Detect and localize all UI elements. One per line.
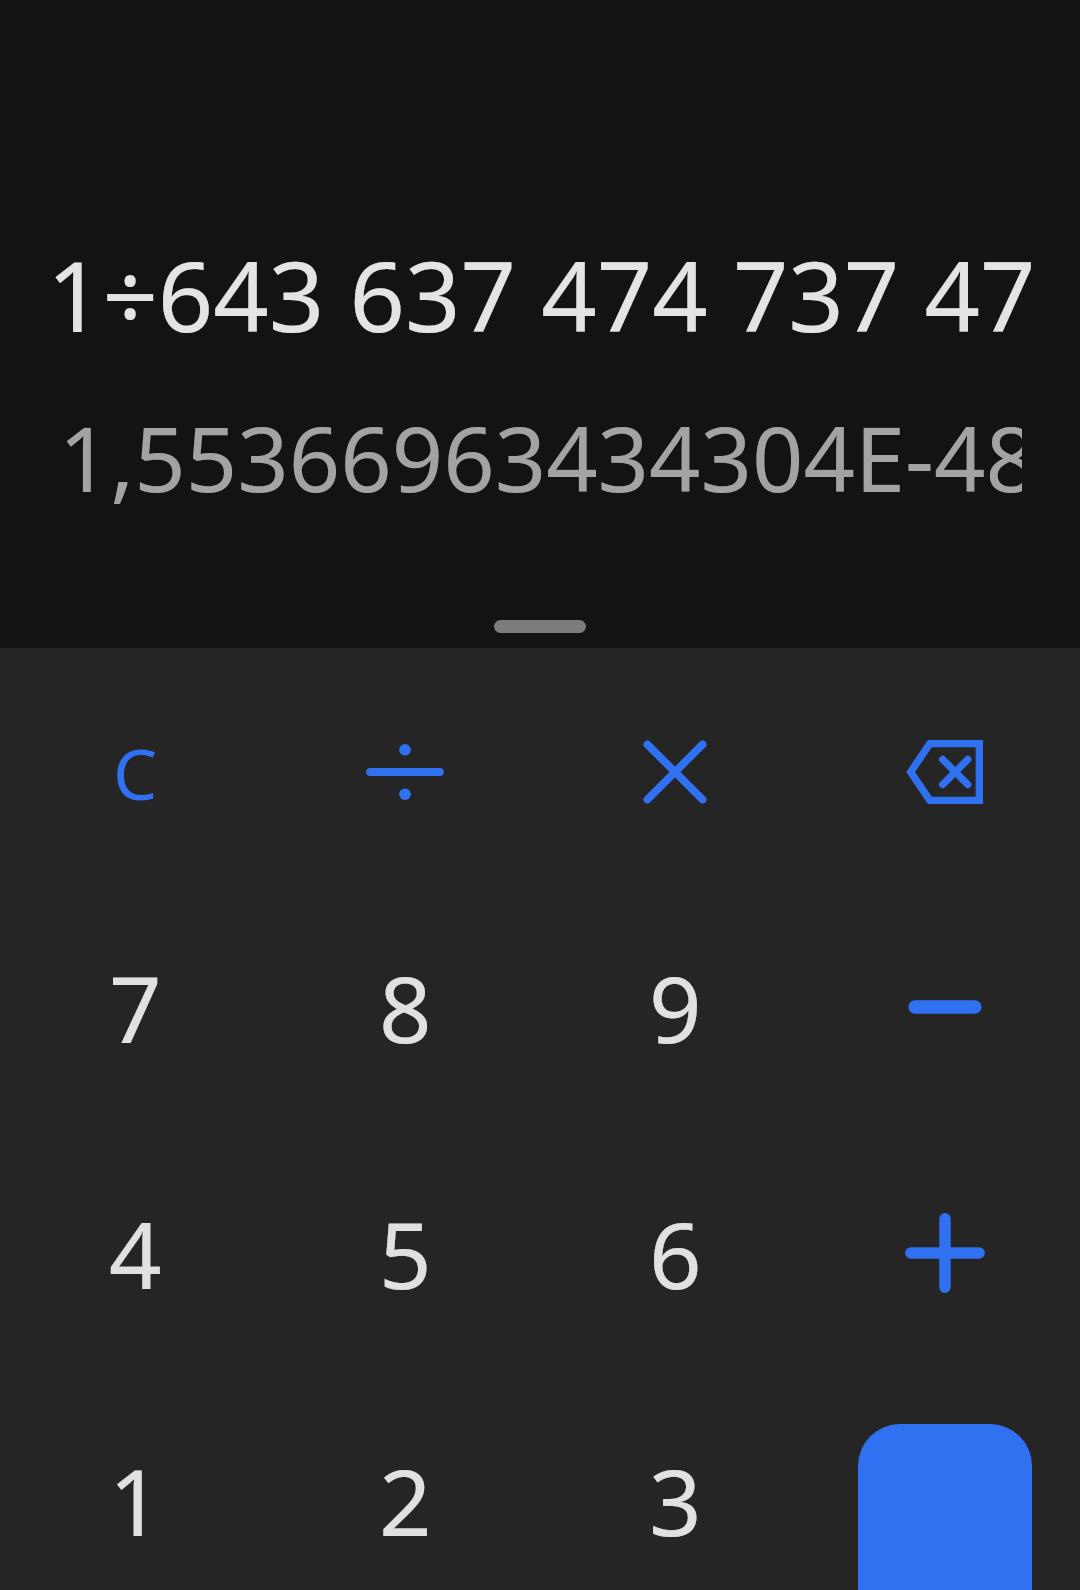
button[interactable]: Divide (290, 672, 520, 872)
button[interactable]: Equals (858, 1424, 1032, 1590)
button[interactable]: 8 (290, 897, 520, 1117)
staticText: 4 (109, 1191, 162, 1316)
staticText: 2 (379, 1438, 432, 1563)
staticText: 3 (649, 1438, 702, 1563)
button[interactable]: 3 (560, 1410, 790, 1590)
staticText: 1 (109, 1438, 162, 1563)
button[interactable]: 5 (290, 1143, 520, 1363)
button[interactable]: 1 (20, 1410, 250, 1590)
staticText: 6 (649, 1191, 702, 1316)
button[interactable]: 4 (20, 1143, 250, 1363)
button[interactable]: Drag handle, show history (464, 600, 616, 653)
staticText: 1÷643 637 474 737 474 (46, 228, 1034, 360)
button[interactable]: Clear (20, 672, 250, 872)
button[interactable]: 7 (20, 897, 250, 1117)
staticText: C (113, 725, 158, 820)
button[interactable]: 9 (560, 897, 790, 1117)
button[interactable]: Backspace (830, 672, 1060, 872)
button[interactable]: Multiply (560, 672, 790, 872)
button[interactable]: 6 (560, 1143, 790, 1363)
staticText: 5 (379, 1191, 432, 1316)
staticText: 7 (109, 945, 162, 1070)
staticText: 9 (649, 945, 702, 1070)
button[interactable]: Minus (830, 897, 1060, 1117)
staticText: 1,55366963434304E-48 (58, 396, 1022, 519)
button[interactable]: Plus (830, 1143, 1060, 1363)
staticText: 8 (379, 945, 432, 1070)
button[interactable]: 2 (290, 1410, 520, 1590)
